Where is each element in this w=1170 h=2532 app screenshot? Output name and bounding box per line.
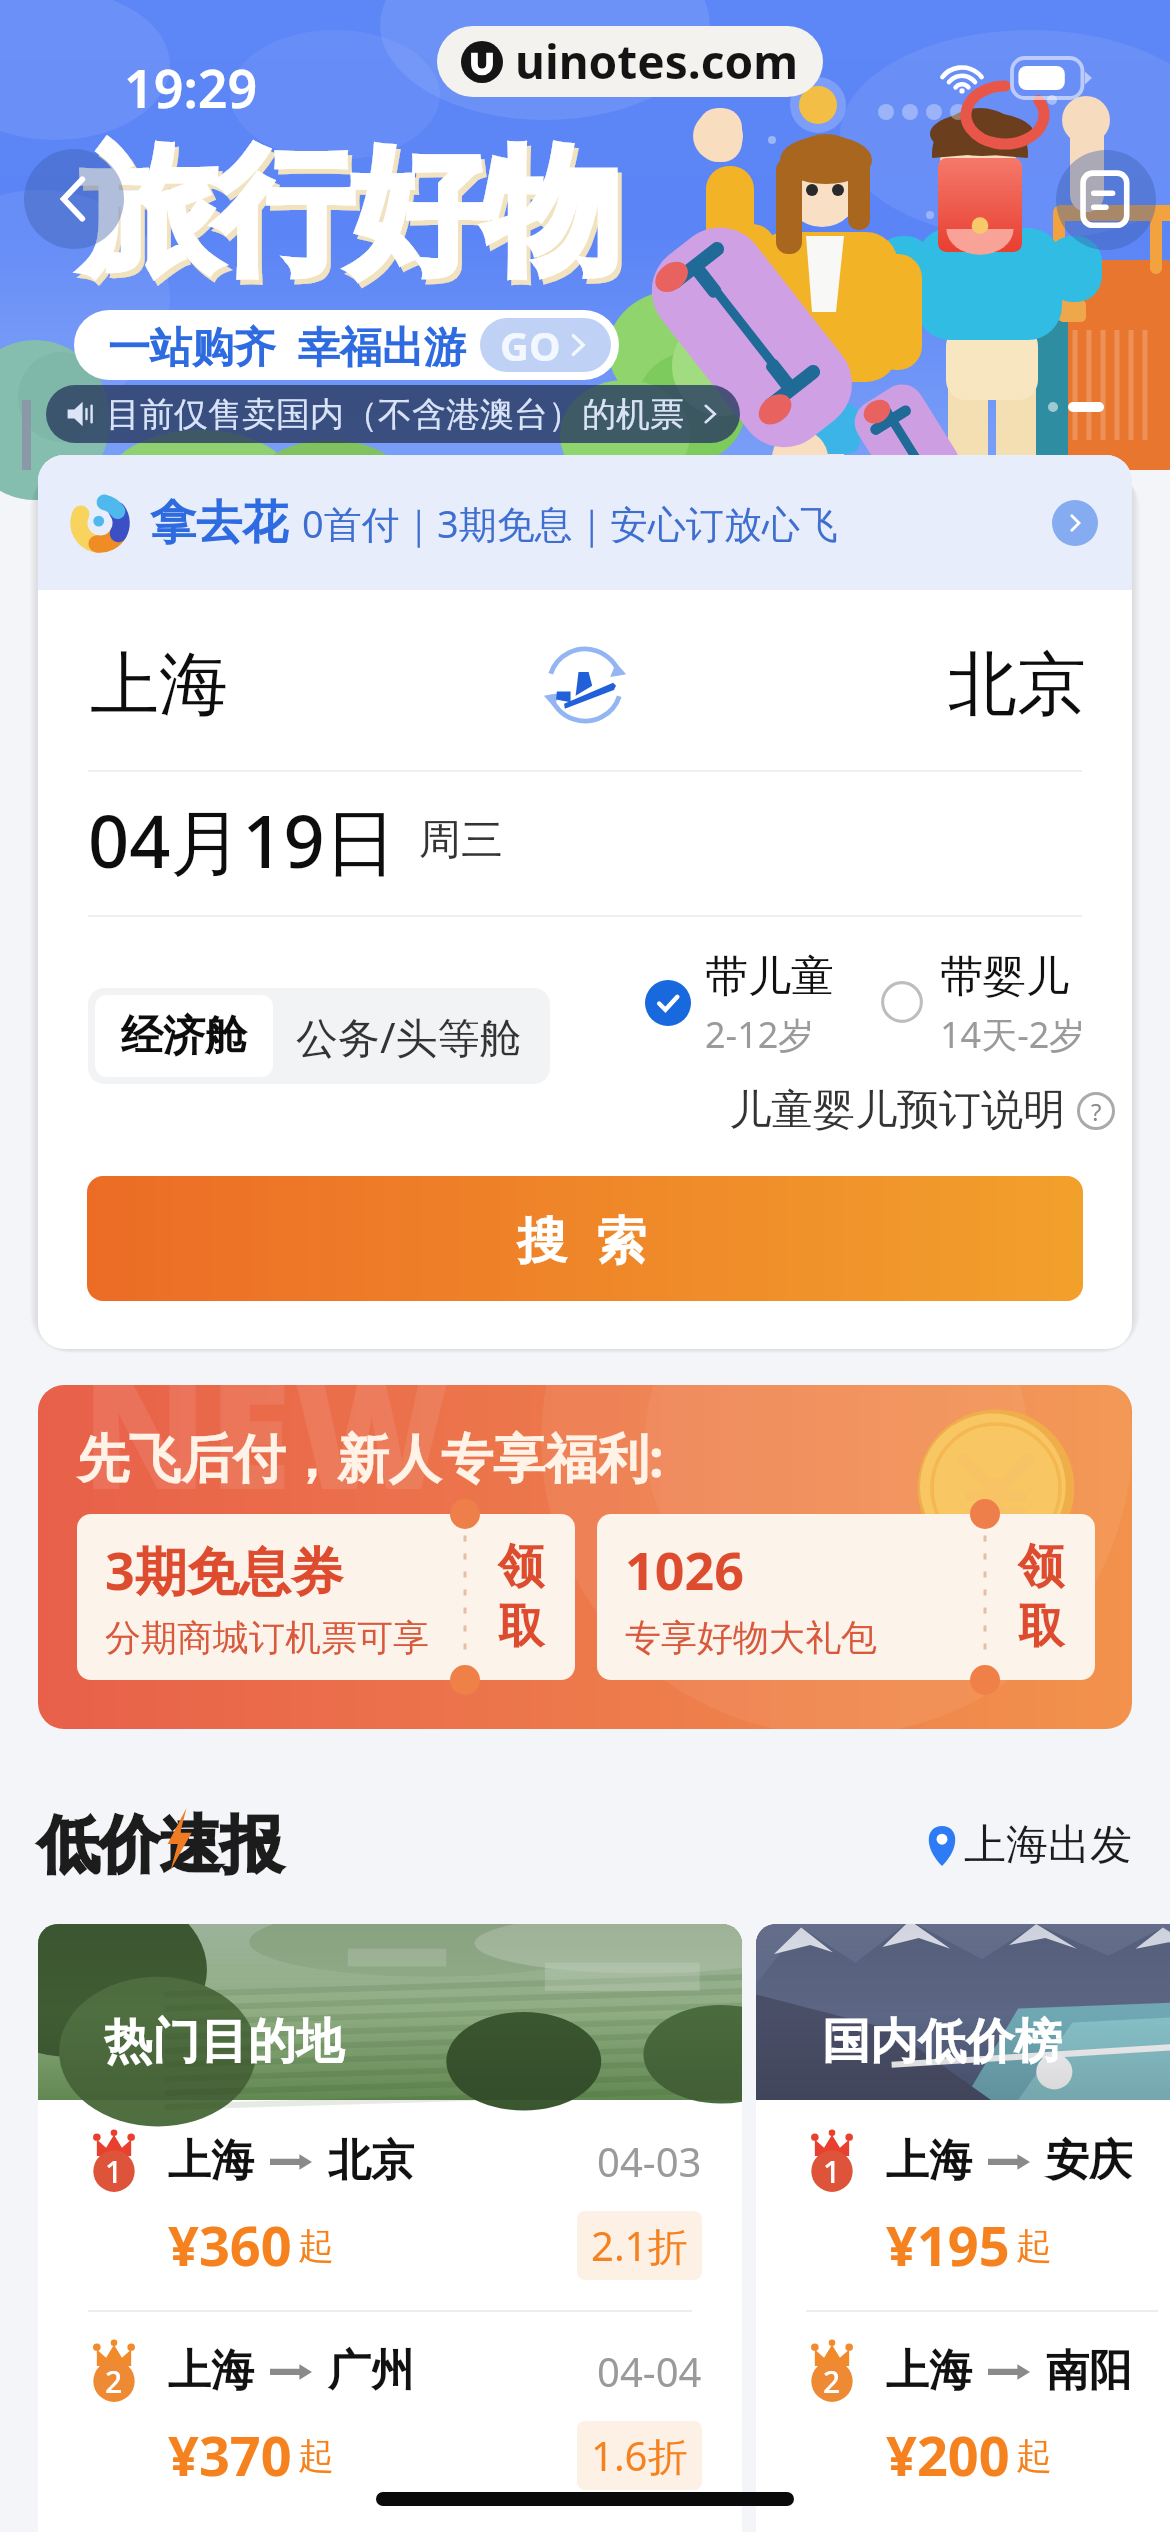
button[interactable]: 带儿童	[645, 950, 834, 1059]
staticText: 带儿童	[705, 950, 834, 1004]
staticText: 专享好物大礼包	[625, 1615, 877, 1660]
staticText: 2-12岁	[705, 1010, 815, 1059]
staticText: uinotes.com	[515, 30, 799, 93]
button[interactable]: 目前仅售卖国内（不含港澳台）的机票	[66, 385, 722, 443]
staticText: 上海出发	[964, 1819, 1132, 1872]
staticText: 起	[1016, 2433, 1052, 2478]
staticText: 起	[298, 2223, 334, 2268]
staticText: 公务/头等舱	[296, 1008, 522, 1065]
button[interactable]: Orders	[1056, 150, 1156, 250]
staticText: 旅行好物	[86, 131, 622, 305]
staticText: 取	[498, 1598, 544, 1656]
staticText: 2	[823, 2361, 841, 2402]
staticText: 旅行好物	[82, 126, 618, 300]
staticText: 04月19日	[88, 791, 397, 889]
button[interactable]: 1026	[597, 1514, 1095, 1680]
button[interactable]: Swap cities	[537, 637, 633, 733]
staticText: 南阳	[1046, 2344, 1132, 2398]
staticText: 起	[298, 2433, 334, 2478]
staticText: 领	[498, 1538, 544, 1596]
staticText: 低价速报	[38, 1806, 282, 1884]
button[interactable]: 04月19日	[88, 790, 1132, 890]
button[interactable]: 北京	[794, 625, 1094, 745]
staticText: 起	[1016, 2223, 1052, 2268]
staticText: 儿童婴儿预订说明	[729, 1084, 1065, 1137]
staticText: 04-03	[597, 2134, 702, 2188]
staticText: 14天-2岁	[940, 1010, 1086, 1059]
staticText: 带婴儿	[940, 950, 1069, 1004]
staticText: 1	[105, 2151, 123, 2192]
staticText: 1	[823, 2151, 841, 2192]
staticText: ¥195	[886, 2208, 1010, 2282]
button[interactable]: 带婴儿	[880, 950, 1086, 1059]
staticText: 0首付｜3期免息｜安心订放心飞	[302, 497, 838, 549]
staticText: 国内低价榜	[822, 2012, 1062, 2072]
staticText: 搜 索	[517, 1205, 654, 1273]
staticText: 一站购齐 幸福出游	[108, 317, 466, 374]
button[interactable]: 热门目的地	[38, 1924, 742, 2532]
staticText: 北京	[948, 642, 1086, 729]
button[interactable]: 上海	[88, 625, 388, 745]
staticText: ¥370	[168, 2418, 292, 2492]
staticText: 上海	[168, 2344, 254, 2398]
staticText: 取	[1018, 1598, 1064, 1656]
button[interactable]: 上海出发	[926, 1819, 1132, 1872]
staticText: GO	[500, 318, 561, 372]
staticText: 1026	[625, 1534, 744, 1605]
staticText: 分期商城订机票可享	[105, 1615, 429, 1660]
staticText: 目前仅售卖国内（不含港澳台）的机票	[106, 393, 684, 436]
staticText: 上海	[168, 2134, 254, 2188]
staticText: 上海	[886, 2344, 972, 2398]
staticText: 北京	[328, 2134, 414, 2188]
staticText: 上海	[90, 642, 228, 729]
staticText: 安庆	[1046, 2134, 1132, 2188]
button[interactable]: 国内低价榜	[756, 1924, 1170, 2532]
button[interactable]: 搜 索	[87, 1176, 1083, 1301]
staticText: ¥360	[168, 2208, 292, 2282]
staticText: 04-04	[597, 2344, 702, 2398]
button[interactable]: 公务/头等舱	[296, 988, 522, 1084]
button[interactable]: 儿童婴儿预订说明	[729, 1084, 1115, 1137]
staticText: 先飞后付，新人专享福利:	[77, 1421, 664, 1492]
staticText: 经济舱	[121, 1010, 247, 1063]
button[interactable]: 拿去花	[68, 455, 1098, 590]
staticText: 19:29	[124, 52, 258, 123]
button[interactable]: 一站购齐 幸福出游	[108, 310, 611, 380]
staticText: 1.6折	[591, 2428, 688, 2483]
staticText: 广州	[328, 2344, 414, 2398]
staticText: 热门目的地	[104, 2012, 344, 2072]
staticText: 领	[1018, 1538, 1064, 1596]
staticText: 周三	[419, 814, 503, 867]
staticText: 2.1折	[591, 2218, 688, 2273]
button[interactable]: 经济舱	[121, 995, 247, 1077]
button[interactable]: Back	[24, 149, 124, 249]
button[interactable]: 3期免息券	[77, 1514, 575, 1680]
staticText: 上海	[886, 2134, 972, 2188]
staticText: NEW	[82, 1385, 452, 1533]
staticText: ?	[1091, 1095, 1102, 1128]
staticText: 3期免息券	[105, 1534, 343, 1605]
staticText: ¥200	[886, 2418, 1010, 2492]
staticText: 2	[105, 2361, 123, 2402]
staticText: 拿去花	[150, 494, 288, 552]
